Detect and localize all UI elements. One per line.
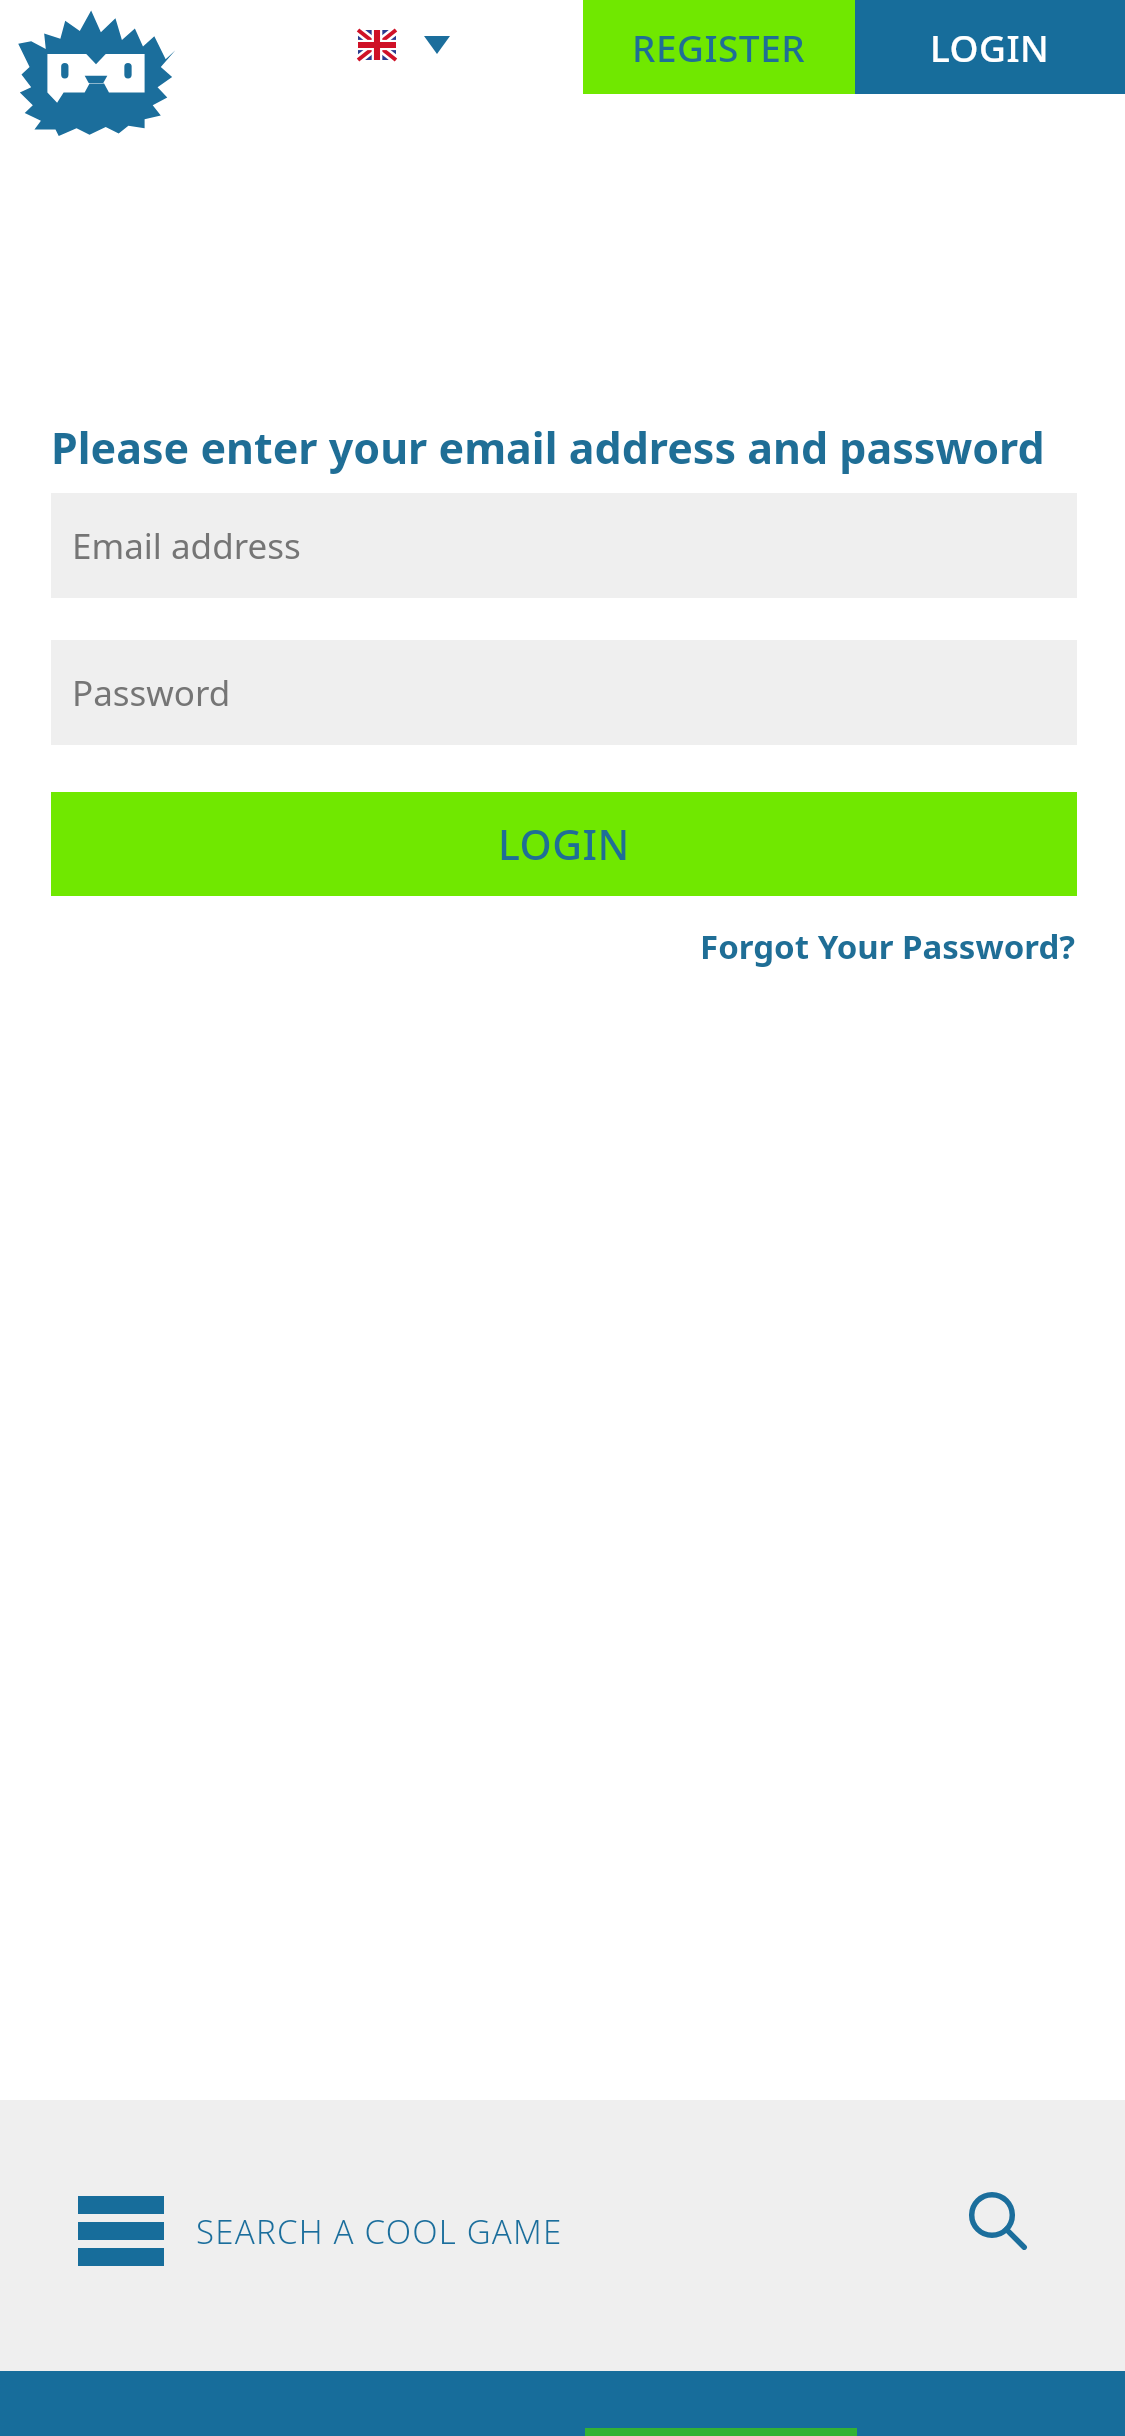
button[interactable]: Forgot Your Password?: [698, 918, 1077, 975]
button[interactable]: Password: [51, 640, 1077, 745]
staticText: LOGIN: [930, 22, 1050, 72]
staticText: SEARCH A COOL GAME: [196, 2209, 563, 2254]
button[interactable]: Select language: [352, 24, 456, 66]
staticText: Password: [72, 669, 231, 717]
staticText: Email address: [72, 522, 301, 570]
button[interactable]: REGISTER: [583, 0, 855, 94]
button[interactable]: LOGIN: [51, 792, 1077, 896]
button[interactable]: LOGIN: [855, 0, 1125, 94]
button[interactable]: SEARCH A COOL GAME: [60, 2182, 581, 2280]
button[interactable]: Search: [955, 2178, 1043, 2266]
staticText: LOGIN: [498, 816, 630, 872]
staticText: REGISTER: [632, 22, 806, 72]
staticText: Please enter your email address and pass…: [51, 418, 1045, 477]
button[interactable]: Email address: [51, 493, 1077, 598]
staticText: Forgot Your Password?: [700, 924, 1075, 969]
button[interactable]: Home: [15, 8, 177, 136]
